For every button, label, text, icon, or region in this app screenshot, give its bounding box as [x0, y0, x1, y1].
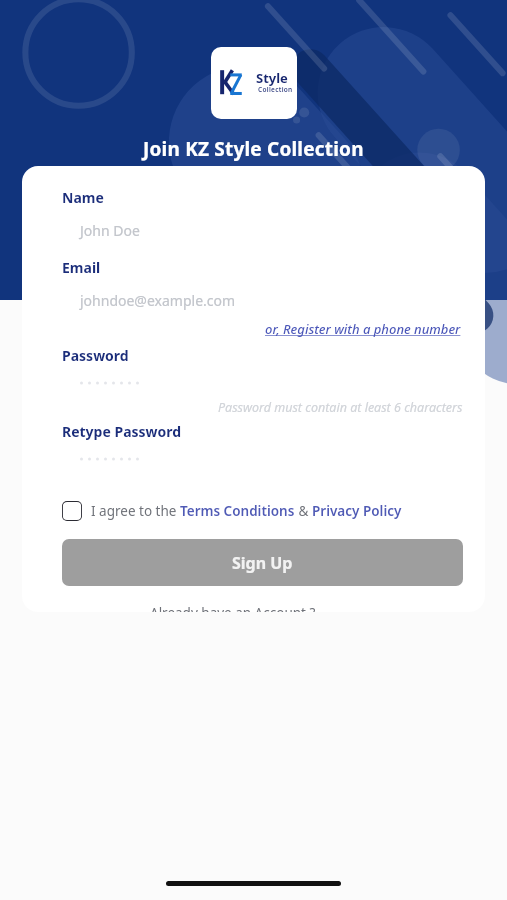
staticText: Terms Conditions — [180, 502, 295, 520]
button[interactable]: John Doe — [62, 219, 463, 242]
staticText: Privacy Policy — [312, 502, 402, 520]
staticText: Collection — [258, 85, 297, 94]
staticText: Retype Password — [62, 422, 182, 441]
other: Agree to terms checkbox — [62, 501, 82, 521]
staticText: Sign Up — [232, 552, 293, 574]
staticText: or, Register with a phone number — [265, 320, 461, 338]
button[interactable]: johndoe@example.com — [62, 289, 463, 312]
staticText: & — [295, 502, 312, 520]
button[interactable]: or, Register with a phone number — [263, 318, 463, 340]
staticText: John Doe — [80, 221, 140, 240]
staticText: Style — [256, 69, 288, 87]
staticText: I agree to the — [91, 502, 180, 520]
staticText: Name — [62, 188, 104, 207]
button[interactable]: Agree to terms checkbox — [62, 497, 463, 525]
staticText: Email — [62, 258, 101, 277]
staticText: Password — [62, 346, 129, 365]
staticText: johndoe@example.com — [80, 291, 236, 310]
staticText: Password must contain at least 6 charact… — [218, 399, 463, 416]
button[interactable]: Sign Up — [62, 539, 463, 586]
staticText: Already have an Account ? — [150, 604, 316, 612]
staticText: Join KZ Style Collection — [143, 136, 364, 162]
